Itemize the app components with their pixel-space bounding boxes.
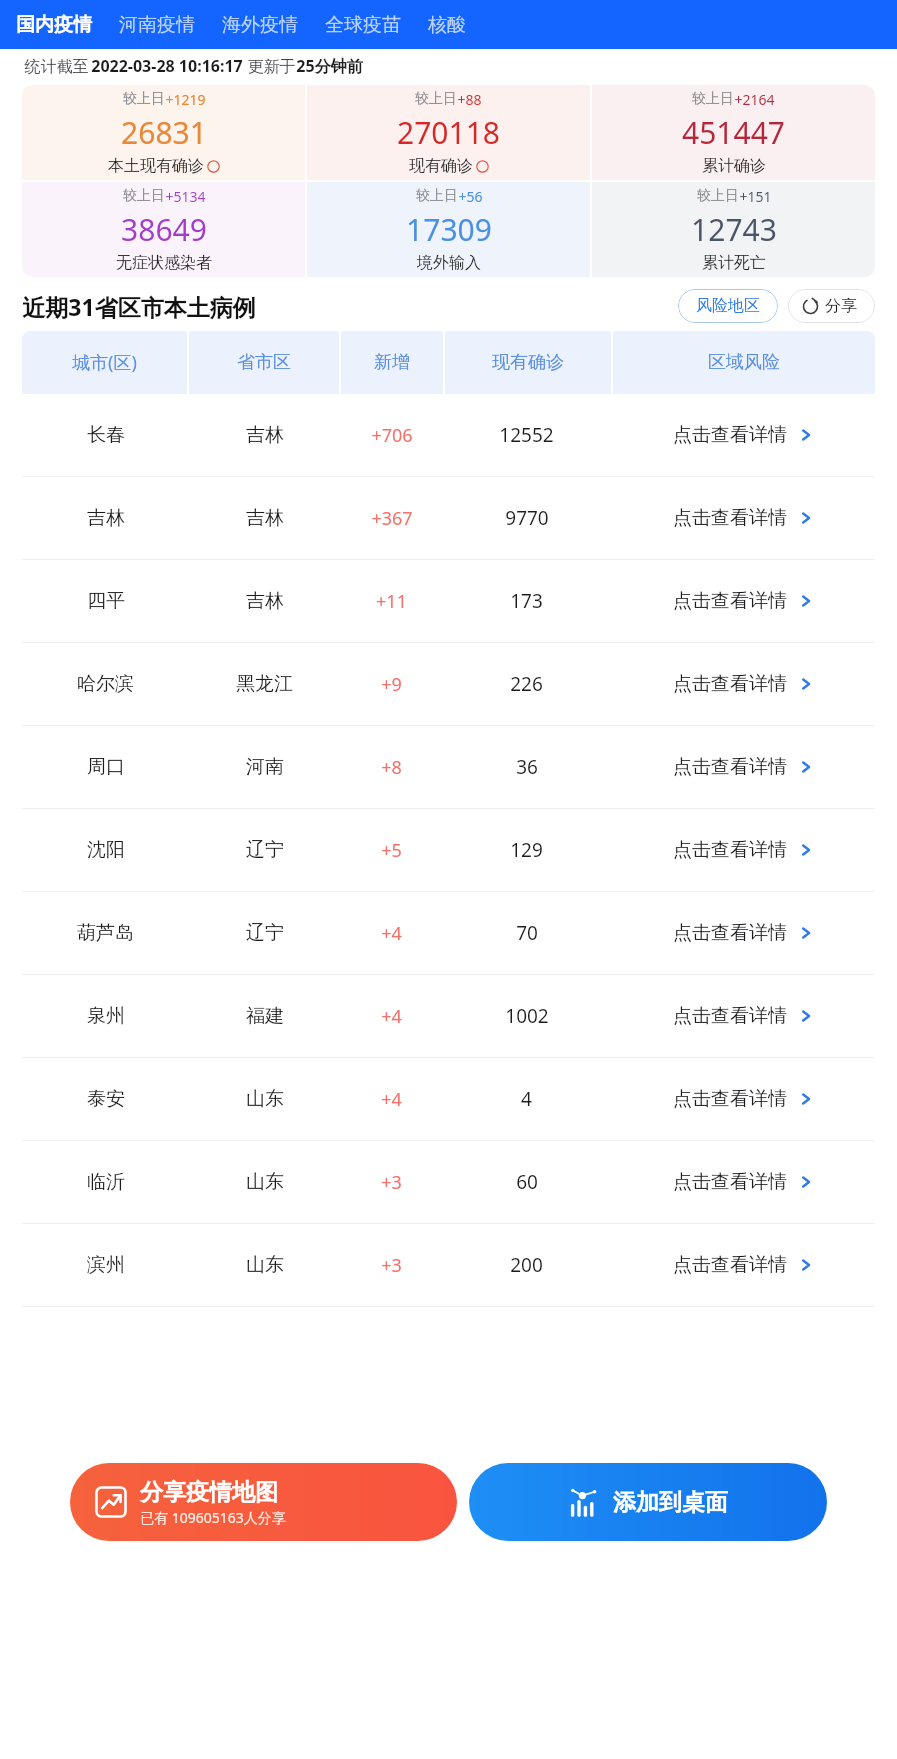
button[interactable]: 核酸	[428, 13, 466, 37]
staticText: 山东	[246, 1087, 284, 1111]
staticText: 点击查看详情	[673, 423, 787, 447]
staticText: 129	[510, 837, 543, 863]
staticText: 河南疫情	[119, 13, 195, 37]
staticText: 吉林	[246, 589, 284, 613]
staticText: 河南	[246, 755, 284, 779]
staticText: 辽宁	[246, 838, 284, 862]
staticText: 省市区	[237, 351, 291, 374]
staticText: 葫芦岛	[77, 921, 134, 945]
staticText: +5	[381, 838, 402, 863]
staticText: 城市(区)	[72, 350, 137, 375]
staticText: 点击查看详情	[673, 1170, 787, 1194]
button[interactable]: 泰安	[22, 1058, 875, 1140]
staticText: 200	[510, 1252, 543, 1278]
staticText: 点击查看详情	[673, 921, 787, 945]
staticText: 哈尔滨	[77, 672, 134, 696]
staticText: 分享	[825, 296, 857, 316]
button[interactable]: 风险地区	[678, 289, 778, 323]
staticText: 辽宁	[246, 921, 284, 945]
staticText: 沈阳	[87, 838, 125, 862]
staticText: 较上日	[697, 187, 739, 205]
staticText: 60	[516, 1169, 538, 1195]
staticText: 9770	[505, 505, 549, 531]
staticText: 周口	[87, 755, 125, 779]
button[interactable]: 河南疫情	[119, 13, 195, 37]
button[interactable]: 较上日	[22, 85, 305, 180]
staticText: 173	[510, 588, 543, 614]
staticText: +1219	[165, 90, 206, 109]
staticText: +11	[376, 589, 407, 614]
staticText: +2164	[734, 90, 775, 109]
staticText: 临沂	[87, 1170, 125, 1194]
button[interactable]: 滨州	[22, 1224, 875, 1306]
staticText: 海外疫情	[222, 13, 298, 37]
staticText: 38649	[121, 209, 207, 250]
staticText: +4	[381, 1087, 402, 1112]
button[interactable]: 较上日	[592, 85, 875, 180]
staticText: 现有确诊	[409, 156, 473, 176]
button[interactable]: 吉林	[22, 477, 875, 559]
button[interactable]: 分享疫情地图	[70, 1463, 457, 1541]
staticText: 近期31省区市本土病例	[22, 291, 256, 322]
staticText: 区域风险	[708, 351, 780, 374]
staticText: +3	[381, 1253, 402, 1278]
button[interactable]: 四平	[22, 560, 875, 642]
staticText: 核酸	[428, 13, 466, 37]
staticText: 较上日	[416, 187, 458, 205]
button[interactable]: 泉州	[22, 975, 875, 1057]
button[interactable]: 较上日	[592, 182, 875, 277]
staticText: 点击查看详情	[673, 506, 787, 530]
staticText: 长春	[87, 423, 125, 447]
staticText: 1002	[505, 1003, 549, 1029]
staticText: +706	[371, 423, 413, 448]
staticText: 累计死亡	[702, 253, 766, 273]
staticText: 较上日	[692, 90, 734, 108]
staticText: 无症状感染者	[116, 253, 212, 273]
staticText: 70	[516, 920, 538, 946]
staticText: 滨州	[87, 1253, 125, 1277]
staticText: 吉林	[87, 506, 125, 530]
staticText: 270118	[397, 112, 500, 153]
staticText: 较上日	[415, 90, 457, 108]
staticText: 山东	[246, 1253, 284, 1277]
staticText: +151	[739, 187, 772, 206]
staticText: +3	[381, 1170, 402, 1195]
button[interactable]: 较上日	[307, 182, 590, 277]
button[interactable]: 葫芦岛	[22, 892, 875, 974]
staticText: 25分钟前	[296, 55, 363, 77]
staticText: 较上日	[123, 187, 165, 205]
button[interactable]: 沈阳	[22, 809, 875, 891]
staticText: 17309	[406, 209, 492, 250]
staticText: 分享疫情地图	[140, 1478, 278, 1507]
button[interactable]: 添加到桌面	[469, 1463, 827, 1541]
button[interactable]: 周口	[22, 726, 875, 808]
staticText: +88	[457, 90, 482, 109]
button[interactable]: 哈尔滨	[22, 643, 875, 725]
staticText: 4	[521, 1086, 532, 1112]
button[interactable]: 长春	[22, 394, 875, 476]
button[interactable]: 国内疫情	[16, 13, 92, 37]
button[interactable]: 临沂	[22, 1141, 875, 1223]
staticText: 山东	[246, 1170, 284, 1194]
staticText: 点击查看详情	[673, 838, 787, 862]
staticText: +8	[381, 755, 402, 780]
staticText: 泉州	[87, 1004, 125, 1028]
staticText: 四平	[87, 589, 125, 613]
staticText: 点击查看详情	[673, 1004, 787, 1028]
staticText: 现有确诊	[492, 351, 564, 374]
staticText: 已有 109605163人分享	[140, 1508, 286, 1527]
button[interactable]: 分享	[788, 289, 875, 323]
staticText: 境外输入	[417, 253, 481, 273]
button[interactable]: 较上日	[307, 85, 590, 180]
staticText: 点击查看详情	[673, 1087, 787, 1111]
staticText: 添加到桌面	[613, 1488, 728, 1517]
button[interactable]: 较上日	[22, 182, 305, 277]
staticText: 吉林	[246, 506, 284, 530]
staticText: 国内疫情	[16, 13, 92, 37]
button[interactable]: 全球疫苗	[325, 13, 401, 37]
button[interactable]: 海外疫情	[222, 13, 298, 37]
staticText: 黑龙江	[236, 672, 293, 696]
staticText: 12743	[691, 209, 777, 250]
staticText: 累计确诊	[702, 156, 766, 176]
staticText: 较上日	[123, 90, 165, 108]
